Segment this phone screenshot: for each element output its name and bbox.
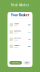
button[interactable]: Apples: [7, 21, 32, 28]
button[interactable]: Checkout: [9, 61, 22, 65]
button[interactable]: Clear: [23, 61, 31, 65]
button[interactable]: Bananas: [7, 28, 32, 36]
staticText: 200 g: [14, 46, 18, 48]
staticText: 3.20: [27, 24, 30, 26]
staticText: 2.90: [27, 45, 30, 47]
staticText: Apples: [14, 23, 19, 25]
staticText: 1.40: [27, 38, 30, 40]
staticText: Spinach: [14, 45, 20, 46]
button[interactable]: Carrots: [7, 36, 32, 43]
staticText: Clear: [25, 62, 29, 64]
staticText: Checkout: [12, 62, 20, 64]
staticText: 1 kg: [14, 25, 17, 27]
staticText: Bananas: [14, 30, 21, 32]
staticText: Your Basket: [11, 13, 29, 17]
button[interactable]: Spinach: [7, 43, 32, 50]
staticText: Carrots: [14, 37, 21, 39]
staticText: 500 g: [14, 39, 18, 41]
staticText: 2.10: [27, 31, 30, 33]
staticText: Fresh Market: [11, 3, 29, 7]
